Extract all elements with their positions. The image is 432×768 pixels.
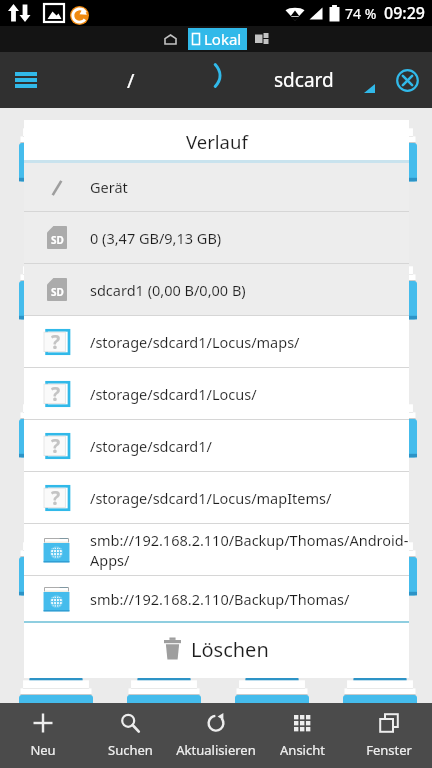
staticText: Fenster <box>366 741 412 759</box>
staticText: Löschen <box>191 636 269 663</box>
button[interactable]: Fenster <box>346 703 432 768</box>
staticText: sdcard1 (0,00 B/0,00 B) <box>90 280 246 300</box>
staticText: /storage/sdcard1/Locus/maps/ <box>90 332 300 352</box>
staticText: Ansicht <box>280 741 325 759</box>
staticText: /storage/sdcard1/ <box>90 436 212 456</box>
staticText: SD <box>51 285 64 299</box>
button[interactable]: SD <box>24 264 409 315</box>
staticText: smb://192.168.2.110/Backup/Thomas/ <box>90 589 350 609</box>
button[interactable]: Aktualisieren <box>173 703 259 768</box>
staticText: 09:29 <box>384 2 425 24</box>
staticText: smb://192.168.2.110/Backup/Thomas/Androi… <box>90 530 409 570</box>
button[interactable]: Home <box>161 28 180 50</box>
button[interactable]: Menu <box>4 58 48 102</box>
staticText: sdcard <box>274 67 334 93</box>
button[interactable]: Close <box>385 58 429 102</box>
staticText: Suchen <box>108 741 153 759</box>
staticText: ? <box>51 433 61 459</box>
button[interactable]: ? <box>24 368 409 419</box>
button[interactable]: / <box>110 52 152 108</box>
staticText: ? <box>51 381 61 407</box>
button[interactable]: Löschen <box>24 623 409 678</box>
button[interactable]: Remote devices <box>252 28 271 50</box>
button[interactable]: ? <box>24 316 409 367</box>
button[interactable]: Gerät <box>24 163 409 211</box>
staticText: Neu <box>30 741 56 759</box>
button[interactable]: ? <box>24 472 409 523</box>
button[interactable]: Neu <box>0 703 86 768</box>
button[interactable]: SD <box>24 212 409 263</box>
button[interactable]: smb://192.168.2.110/Backup/Thomas/Androi… <box>24 524 409 575</box>
staticText: Gerät <box>90 177 128 197</box>
staticText: /storage/sdcard1/Locus/ <box>90 384 257 404</box>
staticText: / <box>127 67 135 94</box>
staticText: Aktualisieren <box>176 741 256 759</box>
button[interactable]: smb://192.168.2.110/Backup/Thomas/ <box>24 576 409 621</box>
button[interactable]: ? <box>24 420 409 471</box>
staticText: SD <box>51 233 64 247</box>
staticText: 74 % <box>345 4 377 23</box>
button[interactable]: sdcard <box>248 52 360 108</box>
staticText: 0 (3,47 GB/9,13 GB) <box>90 228 222 248</box>
button[interactable]: Lokal <box>192 29 242 49</box>
staticText: ? <box>51 485 61 511</box>
staticText: /storage/sdcard1/Locus/mapItems/ <box>90 488 332 508</box>
button[interactable]: Ansicht <box>259 703 345 768</box>
staticText: ? <box>51 329 61 355</box>
button[interactable]: Suchen <box>87 703 173 768</box>
staticText: Lokal <box>204 29 242 49</box>
staticText: Verlauf <box>186 129 248 154</box>
